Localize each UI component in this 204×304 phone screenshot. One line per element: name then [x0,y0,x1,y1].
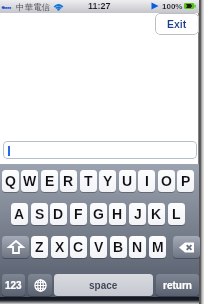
button[interactable]: V [90,236,107,258]
button[interactable]: J [129,203,146,225]
staticText: E [45,173,55,189]
button[interactable]: R [60,170,77,192]
button[interactable]: A [11,203,28,225]
staticText: 中華電信 [16,2,50,13]
staticText: S [35,206,45,222]
staticText: F [74,206,83,222]
staticText: R [63,173,74,189]
staticText: T [84,173,93,189]
staticText: Exit [167,18,187,30]
button[interactable]: E [41,170,58,192]
button[interactable]: N [129,236,146,258]
staticText: M [152,239,164,255]
button[interactable]: X [51,236,68,258]
staticText: V [94,239,104,255]
button[interactable]: H [109,203,126,225]
staticText: 123 [5,280,22,291]
staticText: X [55,239,65,255]
staticText: D [53,206,64,222]
button[interactable]: Backspace [173,236,200,258]
button[interactable]: Y [99,170,116,192]
staticText: Q [5,173,16,189]
staticText: N [132,239,143,255]
staticText: 100% [162,2,183,11]
button[interactable]: K [148,203,165,225]
button[interactable]: Change keyboard [28,274,52,296]
staticText: O [161,173,172,189]
staticText: I [145,173,149,189]
button[interactable]: Exit [155,13,199,35]
staticText: B [113,239,124,255]
button[interactable]: C [70,236,87,258]
staticText: Z [35,239,44,255]
button[interactable]: S [31,203,48,225]
button[interactable]: W [21,170,38,192]
button[interactable] [3,141,197,159]
staticText: G [93,206,104,222]
staticText: L [172,206,181,222]
button[interactable]: F [70,203,87,225]
button[interactable]: Z [31,236,48,258]
button[interactable]: G [90,203,107,225]
button[interactable]: O [158,170,175,192]
button[interactable]: L [168,203,185,225]
staticText: J [134,206,142,222]
button[interactable]: M [149,236,166,258]
button[interactable]: I [138,170,155,192]
staticText: U [122,173,133,189]
staticText: H [112,206,123,222]
staticText: W [23,173,37,189]
button[interactable]: return [156,274,199,296]
staticText: A [14,206,25,222]
staticText: space [89,280,118,291]
button[interactable]: space [54,274,153,296]
button[interactable]: Q [2,170,19,192]
staticText: return [163,280,192,291]
staticText: P [181,173,191,189]
staticText: C [73,239,84,255]
button[interactable]: P [177,170,194,192]
button[interactable]: D [50,203,67,225]
button[interactable]: T [80,170,97,192]
button[interactable]: U [119,170,136,192]
button[interactable]: Shift [2,236,29,258]
staticText: Y [103,173,113,189]
button[interactable]: B [110,236,127,258]
staticText: K [151,206,162,222]
button[interactable]: 123 [2,274,25,296]
staticText: 11:27 [88,1,111,11]
